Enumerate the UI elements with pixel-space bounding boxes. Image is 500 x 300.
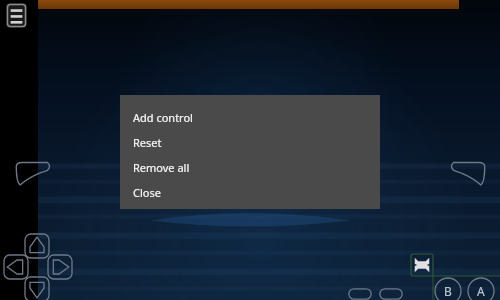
button[interactable]: Close bbox=[120, 180, 380, 205]
button[interactable]: Menu bbox=[6, 3, 27, 28]
button[interactable]: B bbox=[434, 277, 462, 300]
staticText: B bbox=[444, 283, 452, 299]
button[interactable]: L shoulder button bbox=[14, 161, 52, 187]
staticText: Remove all bbox=[133, 160, 190, 175]
staticText: Add control bbox=[133, 110, 193, 125]
button[interactable]: Start bbox=[379, 288, 403, 300]
button[interactable]: Reset bbox=[120, 130, 380, 155]
button[interactable]: D-pad right bbox=[47, 254, 73, 280]
button[interactable]: Toggle fullscreen bbox=[411, 254, 433, 276]
button[interactable]: D-pad up bbox=[24, 233, 50, 259]
button[interactable]: D-pad down bbox=[24, 276, 50, 300]
button[interactable]: A bbox=[467, 277, 495, 300]
staticText: Close bbox=[133, 185, 161, 200]
button[interactable]: R shoulder button bbox=[449, 161, 487, 187]
button[interactable]: D-pad left bbox=[3, 254, 29, 280]
staticText: A bbox=[477, 283, 485, 299]
button[interactable]: Select bbox=[348, 288, 372, 300]
staticText: Reset bbox=[133, 135, 162, 150]
button[interactable]: Add control bbox=[120, 105, 380, 130]
button[interactable]: Remove all bbox=[120, 155, 380, 180]
